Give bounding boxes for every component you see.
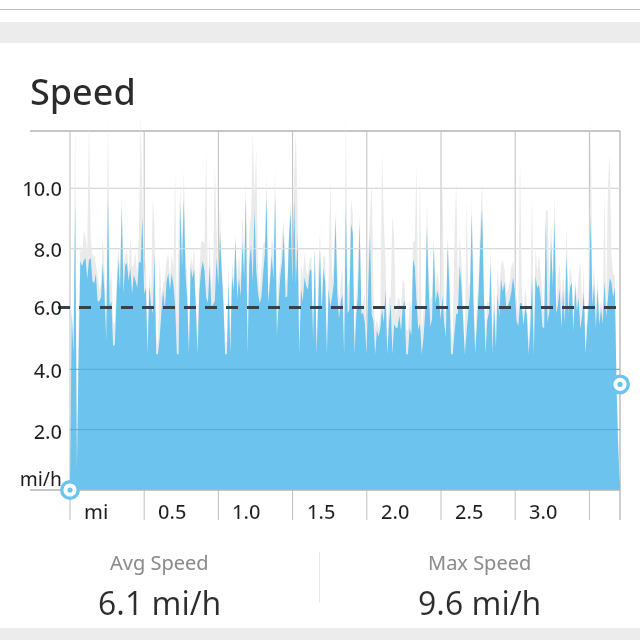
button[interactable]: Avg Speed [0, 538, 319, 628]
staticText: 0.5 [158, 498, 187, 525]
other: Speed over distance chart [0, 130, 640, 530]
staticText: 1.5 [307, 498, 336, 525]
staticText: 8.0 [33, 236, 62, 263]
staticText: Speed [30, 67, 136, 116]
staticText: 2.0 [381, 498, 410, 525]
staticText: 1.0 [232, 498, 261, 525]
staticText: mi [84, 498, 109, 525]
staticText: Max Speed [428, 549, 532, 576]
staticText: 3.0 [529, 498, 558, 525]
staticText: 4.0 [33, 357, 62, 384]
staticText: 9.6 mi/h [418, 581, 542, 625]
button[interactable]: Max Speed [320, 538, 640, 628]
staticText: mi/h [19, 466, 62, 492]
staticText: 2.0 [33, 418, 62, 445]
staticText: 10.0 [22, 175, 62, 202]
staticText: 2.5 [455, 498, 484, 525]
staticText: 6.1 mi/h [98, 581, 222, 625]
staticText: 6.0 [33, 294, 62, 321]
staticText: Avg Speed [110, 549, 209, 576]
button[interactable]: Speed [0, 43, 640, 628]
